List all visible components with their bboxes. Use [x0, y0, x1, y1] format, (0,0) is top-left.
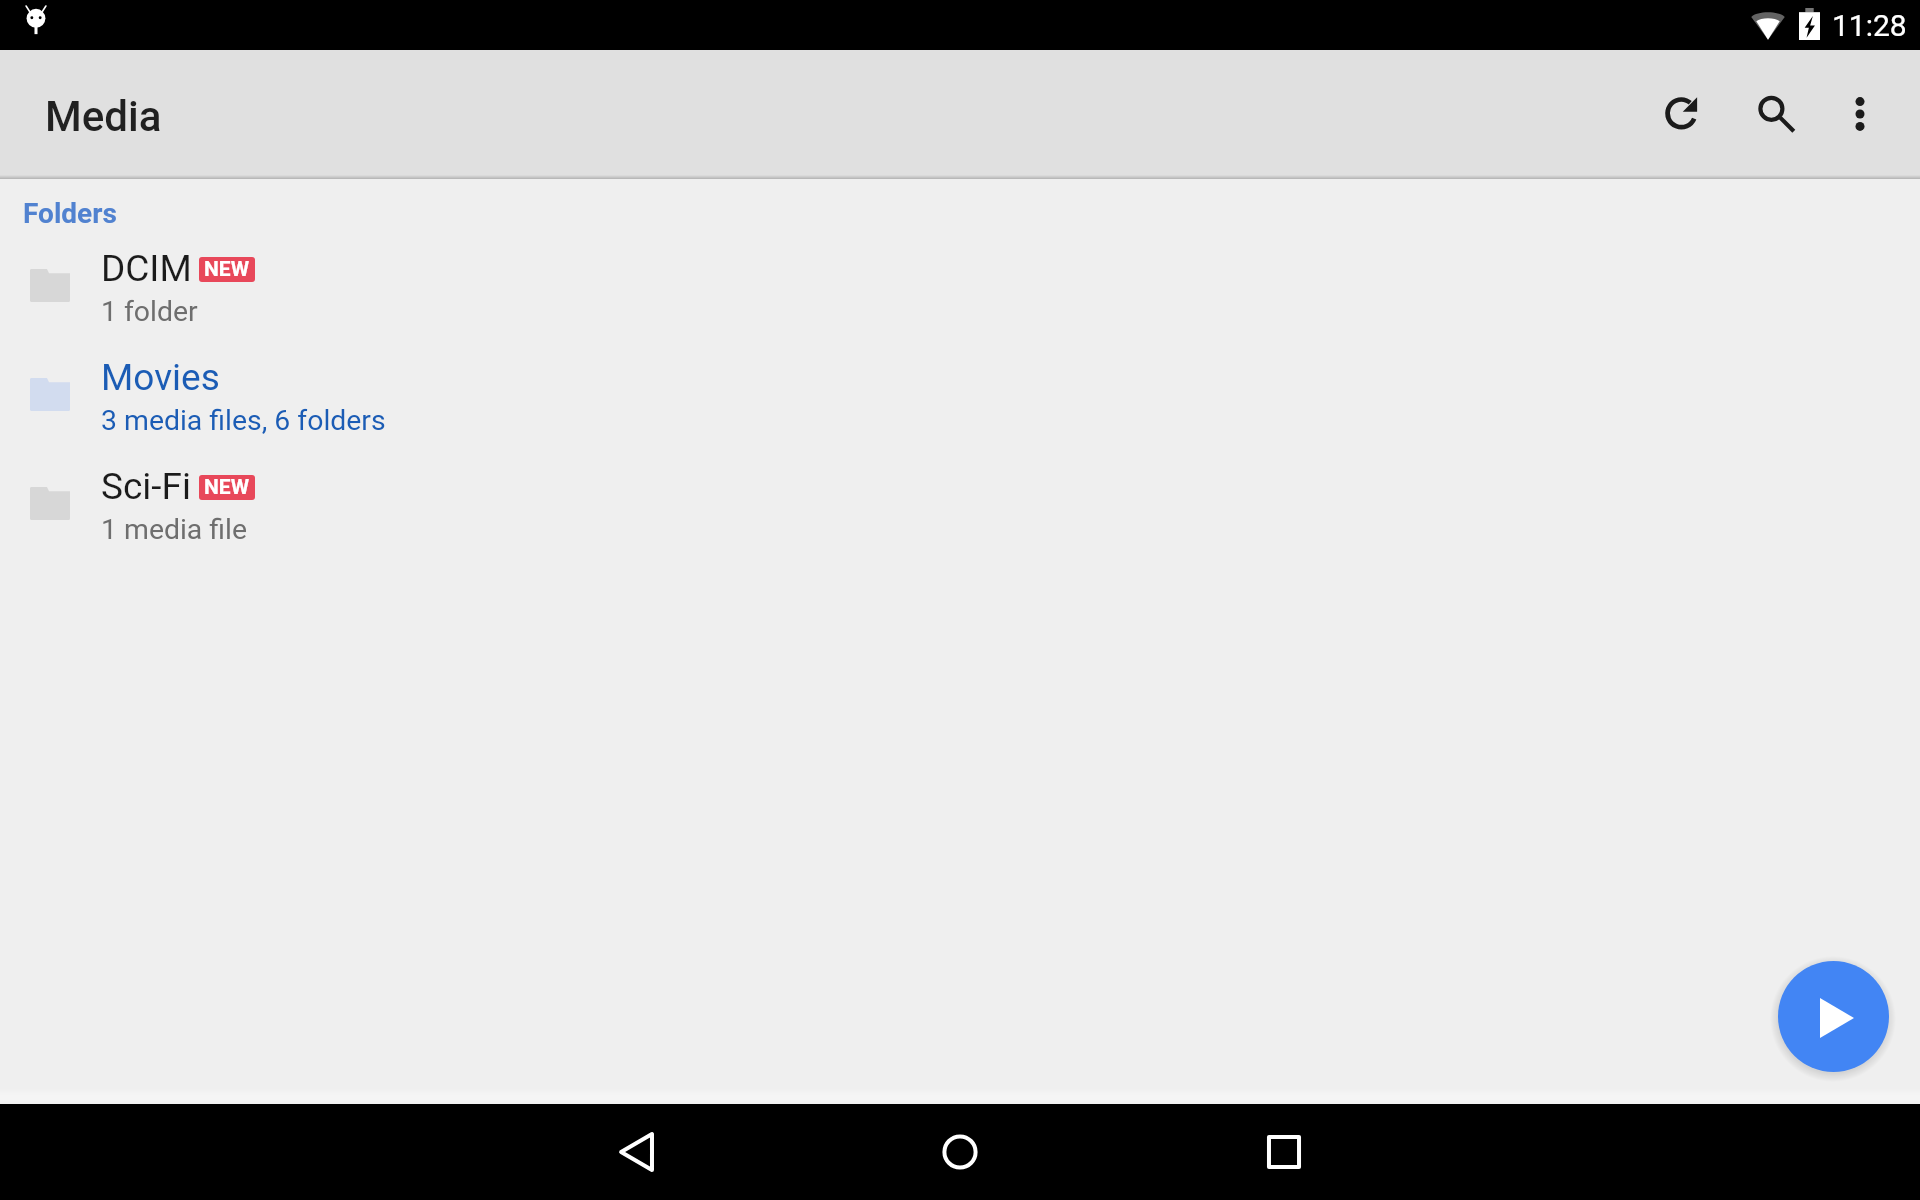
staticText: Media	[45, 92, 162, 141]
staticText: Sci-Fi	[101, 465, 192, 508]
button[interactable]: Recents	[1236, 1104, 1332, 1200]
button[interactable]: Search	[1734, 71, 1818, 155]
staticText: NEW	[204, 475, 250, 500]
staticText: 1 folder	[101, 295, 198, 328]
staticText: 1 media file	[101, 513, 248, 546]
staticText: DCIM	[101, 247, 192, 290]
staticText: NEW	[204, 257, 250, 282]
button[interactable]: Play	[1778, 961, 1889, 1072]
button[interactable]: Back	[588, 1104, 684, 1200]
button[interactable]: Movies	[0, 355, 1920, 464]
button[interactable]: More options	[1818, 72, 1902, 156]
button[interactable]: DCIM	[0, 246, 1920, 355]
button[interactable]: Sci-Fi	[0, 464, 1920, 573]
staticText: 11:28	[1832, 8, 1907, 43]
staticText: 3 media files, 6 folders	[101, 404, 386, 437]
button[interactable]: Home	[912, 1104, 1008, 1200]
staticText: Movies	[101, 356, 220, 399]
button[interactable]: Refresh	[1640, 72, 1724, 156]
staticText: Folders	[23, 197, 117, 230]
